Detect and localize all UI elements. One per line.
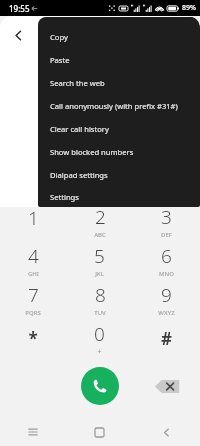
staticText: MNO	[159, 270, 174, 278]
staticText: Show blocked numbers	[50, 147, 134, 157]
button[interactable]: 4	[0, 241, 66, 280]
staticText: 89%	[182, 3, 196, 13]
staticText: 0	[94, 321, 105, 347]
button[interactable]: 0	[66, 319, 133, 358]
staticText: 1	[28, 205, 39, 231]
button[interactable]: Home	[66, 418, 133, 446]
button[interactable]: Call anonymously (with prefix #31#)	[38, 94, 200, 117]
staticText: ABC	[94, 231, 106, 239]
button[interactable]: 5	[66, 241, 133, 280]
staticText: 7	[28, 282, 39, 308]
staticText: 6	[161, 243, 172, 269]
button[interactable]: Backspace	[154, 378, 180, 395]
staticText: 5	[94, 243, 105, 269]
button[interactable]: 7	[0, 280, 66, 319]
button[interactable]: Paste	[38, 48, 200, 71]
button[interactable]: #	[133, 319, 200, 358]
staticText: 8	[95, 282, 106, 308]
staticText: 9	[161, 282, 172, 308]
staticText: DEF	[161, 231, 172, 239]
button[interactable]: Back	[6, 23, 30, 47]
button[interactable]: Show blocked numbers	[38, 140, 200, 163]
staticText: JKL	[95, 270, 104, 278]
staticText: #	[161, 327, 172, 350]
button[interactable]: Clear call history	[38, 117, 200, 140]
staticText: Clear call history	[50, 124, 109, 134]
staticText: Paste	[50, 55, 70, 65]
staticText: TUV	[94, 309, 106, 317]
staticText: *	[28, 327, 38, 350]
staticText: 3	[161, 204, 172, 230]
button[interactable]: Recent apps	[0, 418, 66, 446]
button[interactable]: Dialpad settings	[38, 163, 200, 186]
staticText: Search the web	[50, 78, 105, 88]
staticText: Copy	[50, 32, 68, 42]
staticText: Call anonymously (with prefix #31#)	[50, 101, 178, 111]
button[interactable]: 2	[66, 202, 133, 241]
button[interactable]: 9	[133, 280, 200, 319]
button[interactable]: Search the web	[38, 71, 200, 94]
staticText: +	[97, 347, 102, 357]
staticText: Settings	[50, 192, 79, 202]
button[interactable]: Settings	[38, 186, 200, 207]
button[interactable]: 1	[0, 202, 66, 241]
staticText: PQRS	[25, 309, 41, 317]
staticText: GHI	[28, 270, 39, 278]
button[interactable]: Copy	[38, 25, 200, 48]
staticText: 2	[95, 204, 106, 230]
button[interactable]: Call	[81, 367, 119, 405]
staticText: 19:55	[9, 3, 30, 14]
staticText: 4	[28, 243, 39, 269]
button[interactable]: 3	[133, 202, 200, 241]
staticText: WXYZ	[158, 309, 175, 317]
staticText: Dialpad settings	[50, 170, 108, 180]
button[interactable]: *	[0, 319, 66, 358]
button[interactable]: 6	[133, 241, 200, 280]
button[interactable]: Back	[133, 418, 200, 446]
button[interactable]: 8	[66, 280, 133, 319]
